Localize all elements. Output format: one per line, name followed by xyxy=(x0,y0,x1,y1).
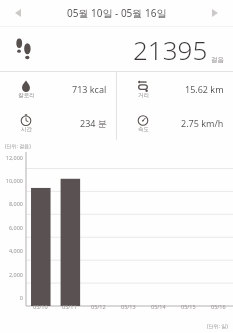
staticText: 속도 xyxy=(138,126,149,133)
button[interactable]: 거리 xyxy=(117,72,233,106)
staticText: 15.62 km xyxy=(185,83,224,95)
staticText: 05/12 xyxy=(91,303,106,310)
button[interactable]: 칼로리 xyxy=(0,72,116,106)
staticText: 0 xyxy=(0,294,23,301)
staticText: 칼로리 xyxy=(18,92,35,99)
other: Steps xyxy=(16,37,33,61)
staticText: 걸음 xyxy=(211,56,224,64)
staticText: 4,000 xyxy=(0,247,23,254)
staticText: 12,000 xyxy=(0,154,23,161)
staticText: 시간 xyxy=(21,126,32,133)
staticText: 21395 xyxy=(133,32,208,67)
staticText: (단위: 걸음) xyxy=(5,143,31,150)
staticText: 2,000 xyxy=(0,271,23,278)
staticText: (단위: 일) xyxy=(207,323,228,330)
staticText: 234 분 xyxy=(80,117,107,129)
staticText: 05/11 xyxy=(62,303,77,310)
staticText: 10,000 xyxy=(0,177,23,184)
button[interactable]: 속도 xyxy=(117,106,233,140)
button[interactable]: 05월 10일 - 05월 16일 xyxy=(67,6,167,20)
staticText: 6,000 xyxy=(0,224,23,231)
staticText: 05/15 xyxy=(181,303,196,310)
staticText: 05/14 xyxy=(151,303,166,310)
staticText: 713 kcal xyxy=(72,83,107,95)
staticText: 05월 10일 - 05월 16일 xyxy=(67,6,167,20)
button[interactable]: Next week xyxy=(202,0,228,26)
button[interactable]: Steps xyxy=(0,27,233,71)
staticText: 05/10 xyxy=(33,303,48,310)
button[interactable]: Previous week xyxy=(5,0,31,26)
button[interactable]: 시간 xyxy=(0,106,116,140)
staticText: 거리 xyxy=(138,92,149,99)
staticText: 05/13 xyxy=(121,303,136,310)
staticText: 8,000 xyxy=(0,200,23,207)
staticText: 05/16 xyxy=(211,303,226,310)
staticText: 2.75 km/h xyxy=(181,117,224,129)
